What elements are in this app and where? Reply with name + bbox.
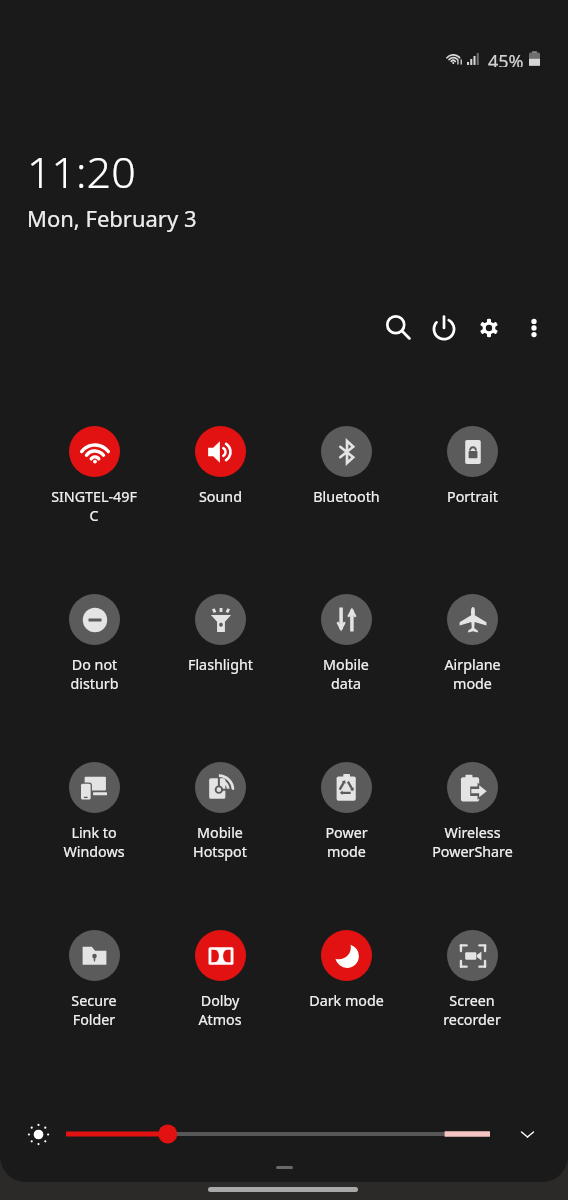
staticText: Mon, February 3 bbox=[27, 203, 197, 233]
button[interactable]: Power mode bbox=[283, 762, 409, 861]
staticText: Secure Folder bbox=[71, 991, 117, 1029]
staticText: Bluetooth bbox=[313, 487, 380, 506]
button[interactable]: Wireless PowerShare bbox=[409, 762, 535, 861]
button[interactable]: Link to Windows bbox=[31, 762, 157, 861]
staticText: Flashlight bbox=[188, 655, 253, 674]
staticText: Dolby Atmos bbox=[198, 991, 242, 1029]
button[interactable]: Secure Folder bbox=[31, 930, 157, 1029]
button[interactable]: Portrait bbox=[409, 426, 535, 506]
staticText: Portrait bbox=[447, 487, 498, 506]
button[interactable]: Airplane mode bbox=[409, 594, 535, 693]
staticText: Airplane mode bbox=[444, 655, 501, 693]
staticText: Mobile Hotspot bbox=[193, 823, 247, 861]
button[interactable]: Expand bbox=[511, 1118, 543, 1150]
button[interactable]: Power off bbox=[426, 310, 462, 346]
button[interactable]: Bluetooth bbox=[283, 426, 409, 506]
staticText: Link to Windows bbox=[63, 823, 125, 861]
button[interactable]: SINGTEL-49F C bbox=[31, 426, 157, 525]
staticText: Dark mode bbox=[309, 991, 384, 1010]
button[interactable]: Sound bbox=[157, 426, 283, 506]
button[interactable]: Brightness bbox=[26, 1122, 50, 1146]
button[interactable]: Screen recorder bbox=[409, 930, 535, 1029]
button[interactable]: Settings bbox=[471, 310, 507, 346]
button[interactable]: Dark mode bbox=[283, 930, 409, 1010]
button[interactable]: Flashlight bbox=[157, 594, 283, 674]
staticText: Mobile data bbox=[323, 655, 369, 693]
staticText: Power mode bbox=[325, 823, 368, 861]
button[interactable]: Mobile data bbox=[283, 594, 409, 693]
button[interactable]: Mobile Hotspot bbox=[157, 762, 283, 861]
staticText: Sound bbox=[199, 487, 242, 506]
staticText: Screen recorder bbox=[443, 991, 501, 1029]
staticText: 45% bbox=[488, 49, 524, 67]
staticText: Do not disturb bbox=[70, 655, 119, 693]
button[interactable]: More options bbox=[516, 310, 552, 346]
staticText: 11:20 bbox=[27, 142, 136, 201]
button[interactable]: Search bbox=[381, 310, 417, 346]
button[interactable]: Dolby Atmos bbox=[157, 930, 283, 1029]
button[interactable] bbox=[66, 1121, 490, 1147]
button[interactable]: Do not disturb bbox=[31, 594, 157, 693]
staticText: Wireless PowerShare bbox=[432, 823, 513, 861]
staticText: SINGTEL-49F C bbox=[51, 487, 137, 525]
